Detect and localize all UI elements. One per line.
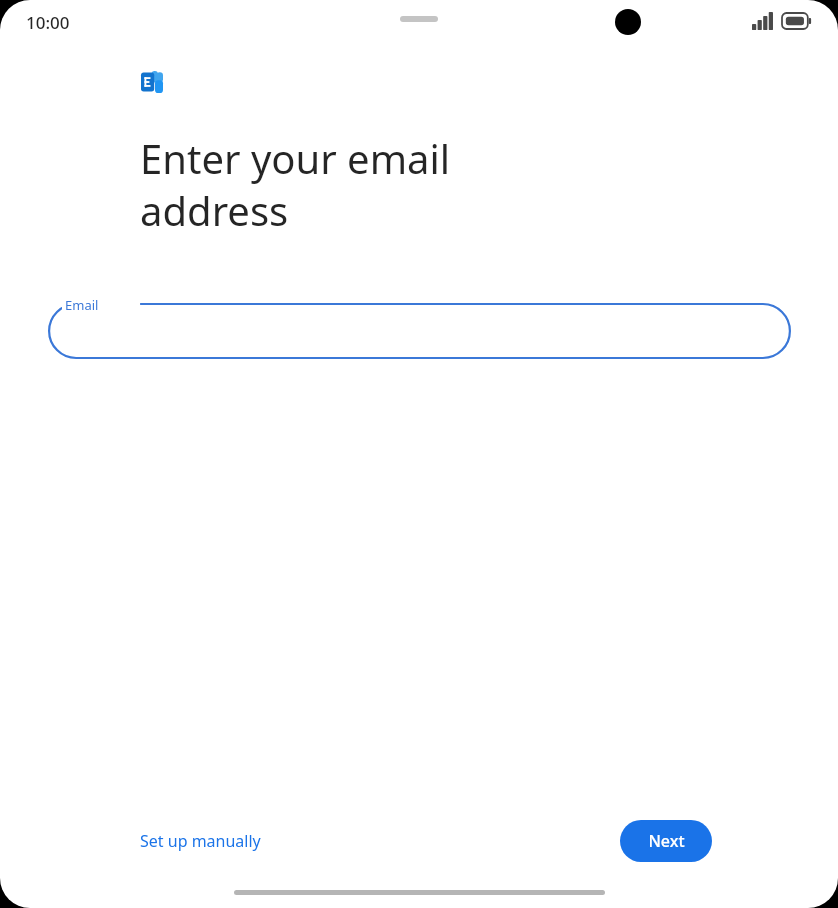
staticText: Email: [65, 296, 99, 314]
staticText: 10:00: [26, 11, 70, 34]
button[interactable]: Next: [620, 820, 712, 862]
button[interactable]: Set up manually: [126, 820, 275, 862]
staticText: Set up manually: [140, 830, 261, 852]
staticText: Next: [648, 830, 685, 852]
button[interactable]: Email: [48, 300, 791, 362]
staticText: Enter your email address: [140, 131, 451, 238]
